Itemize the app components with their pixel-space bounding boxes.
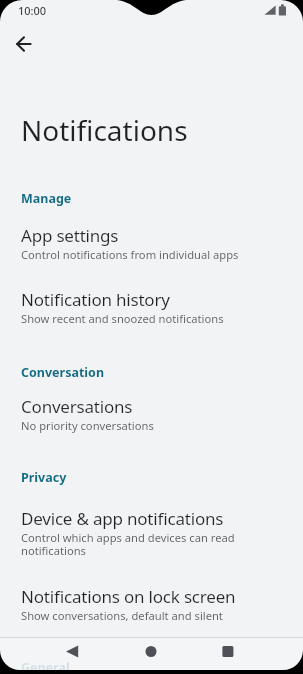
staticText: Notification history	[21, 288, 170, 311]
staticText: Device & app notifications	[21, 507, 224, 530]
staticText: Control notifications from individual ap…	[21, 247, 239, 262]
staticText: Notifications	[21, 111, 188, 149]
staticText: No priority conversations	[21, 418, 154, 433]
button[interactable]: Notifications on lock screen	[0, 585, 303, 641]
staticText: App settings	[21, 224, 119, 247]
staticText: 10:00	[18, 3, 47, 18]
staticText: Privacy	[21, 469, 67, 486]
button[interactable]	[10, 31, 36, 57]
staticText: Conversation	[21, 364, 105, 381]
staticText: Show recent and snoozed notifications	[21, 311, 224, 326]
staticText: notifications	[21, 543, 86, 558]
button[interactable]: Device & app notifications	[0, 507, 303, 577]
staticText: Show conversations, default and silent	[21, 608, 223, 623]
staticText: Manage	[21, 190, 72, 207]
staticText: Control which apps and devices can read	[21, 530, 235, 545]
button[interactable]: Conversations	[0, 395, 303, 451]
button[interactable]: Notification history	[0, 288, 303, 344]
staticText: Conversations	[21, 395, 133, 418]
button[interactable]: App settings	[0, 224, 303, 280]
staticText: Notifications on lock screen	[21, 585, 236, 608]
staticText: General	[21, 659, 70, 674]
